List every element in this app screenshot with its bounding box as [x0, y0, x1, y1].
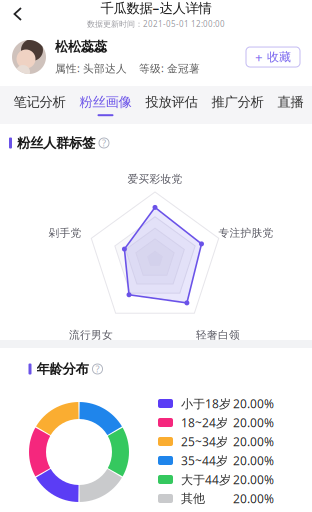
staticText: + — [255, 48, 263, 66]
button[interactable]: 直播 — [277, 86, 303, 124]
staticText: ? — [95, 363, 99, 375]
staticText: 千瓜数据–达人详情 — [100, 0, 211, 16]
button[interactable]: 粉丝画像 — [79, 86, 131, 124]
staticText: 年龄分布 — [36, 361, 88, 377]
staticText: 粉丝画像 — [79, 94, 131, 110]
staticText: 粉丝人群标签 — [17, 135, 95, 151]
staticText: 专注护肤党 — [218, 226, 273, 239]
staticText: 属性: 头部达人 — [55, 61, 127, 75]
staticText: 剁手党 — [48, 226, 81, 239]
staticText: 直播 — [277, 94, 303, 110]
staticText: 松松蕊蕊 — [55, 39, 107, 55]
staticText: 18~24岁 — [181, 414, 228, 430]
staticText: 笔记分析 — [13, 94, 65, 110]
staticText: 其他 — [181, 491, 205, 506]
staticText: 爱买彩妆党 — [127, 172, 182, 185]
staticText: 轻奢白领 — [196, 328, 240, 341]
staticText: 大于44岁 — [181, 471, 231, 487]
button[interactable]: 投放评估 — [145, 86, 197, 124]
staticText: 20.00% — [233, 452, 274, 468]
staticText: 等级: 金冠薯 — [139, 61, 200, 75]
staticText: 35~44岁 — [181, 452, 228, 468]
button[interactable]: 笔记分析 — [13, 86, 65, 124]
button[interactable]: + — [246, 47, 300, 67]
staticText: 20.00% — [233, 395, 274, 411]
staticText: 数据更新时间：2021-05-01 12:00:00 — [87, 18, 225, 29]
staticText: 投放评估 — [145, 94, 197, 110]
button[interactable]: 推广分析 — [211, 86, 263, 124]
staticText: 20.00% — [233, 414, 274, 430]
staticText: 小于18岁 — [181, 395, 231, 411]
staticText: 20.00% — [233, 471, 274, 487]
staticText: 20.00% — [233, 433, 274, 449]
staticText: 推广分析 — [211, 94, 263, 110]
button[interactable]: 返回 — [0, 0, 36, 28]
staticText: 20.00% — [233, 490, 274, 506]
staticText: 收藏 — [267, 50, 291, 64]
staticText: ? — [102, 137, 106, 149]
staticText: 流行男女 — [69, 328, 113, 341]
staticText: 25~34岁 — [181, 433, 228, 449]
